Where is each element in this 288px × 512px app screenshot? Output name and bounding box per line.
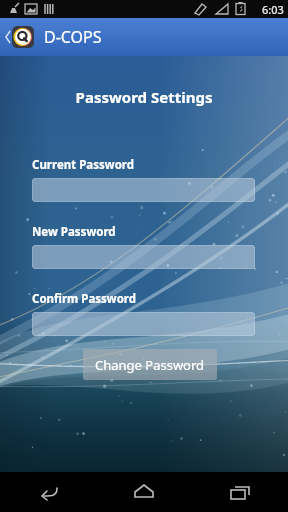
button[interactable]: Recents: [192, 472, 288, 512]
button[interactable]: Back: [0, 472, 96, 512]
button[interactable]: [32, 178, 255, 202]
staticText: Password Settings: [0, 87, 288, 107]
button[interactable]: [32, 245, 255, 269]
staticText: Current Password: [32, 157, 135, 173]
button[interactable]: Change Password: [83, 349, 217, 380]
staticText: Change Password: [95, 356, 205, 374]
staticText: Confirm Password: [32, 291, 137, 307]
staticText: 6:03: [262, 2, 284, 17]
button[interactable]: [32, 312, 255, 336]
button[interactable]: Home: [96, 472, 192, 512]
button[interactable]: Navigate up: [2, 20, 36, 54]
staticText: New Password: [32, 224, 116, 240]
staticText: D-COPS: [44, 26, 102, 48]
